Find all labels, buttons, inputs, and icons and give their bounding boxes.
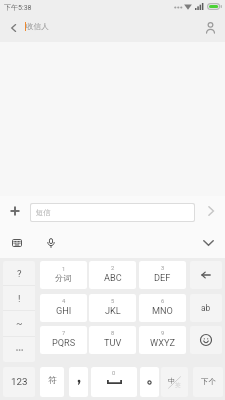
staticText: 123 bbox=[11, 376, 28, 387]
button[interactable]: 1 bbox=[40, 261, 87, 289]
staticText: MNO bbox=[152, 305, 173, 316]
staticText: 4 bbox=[62, 298, 66, 305]
staticText: 9 bbox=[161, 330, 165, 337]
staticText: 8 bbox=[111, 330, 115, 337]
button[interactable]: ~ bbox=[3, 311, 35, 336]
staticText: 6 bbox=[161, 298, 165, 305]
staticText: 1 bbox=[62, 266, 66, 273]
staticText: 5 bbox=[111, 298, 115, 305]
staticText: 短信 bbox=[36, 208, 51, 217]
staticText: 中 bbox=[168, 377, 175, 385]
button[interactable]: Send bbox=[199, 198, 223, 224]
staticText: 2 bbox=[111, 265, 115, 272]
staticText: 3 bbox=[161, 265, 165, 272]
staticText: 下个 bbox=[201, 377, 216, 386]
staticText: 分词 bbox=[55, 273, 72, 283]
button[interactable]: 符 bbox=[40, 367, 64, 397]
button[interactable]: 5 bbox=[89, 294, 136, 322]
button[interactable]: 9 bbox=[139, 326, 186, 354]
staticText: ~ bbox=[16, 318, 23, 329]
button[interactable]: 4 bbox=[40, 294, 87, 322]
staticText: TUV bbox=[104, 337, 122, 348]
staticText: 符 bbox=[48, 375, 57, 386]
button[interactable]: 123 bbox=[3, 367, 35, 397]
staticText: ! bbox=[18, 293, 21, 304]
button[interactable] bbox=[69, 367, 88, 397]
staticText: ? bbox=[17, 268, 22, 279]
staticText: 英 bbox=[175, 382, 181, 389]
button[interactable]: Add attachment bbox=[3, 198, 27, 224]
button[interactable]: Space bbox=[91, 367, 137, 397]
staticText: JKL bbox=[105, 305, 121, 316]
button[interactable]: Emoji bbox=[190, 326, 222, 354]
button[interactable]: Chinese English toggle bbox=[161, 367, 188, 397]
button[interactable]: Backspace bbox=[190, 261, 222, 289]
button[interactable] bbox=[140, 367, 159, 397]
button[interactable]: Back bbox=[2, 15, 25, 40]
button[interactable] bbox=[3, 337, 35, 362]
button[interactable]: ab bbox=[190, 294, 222, 322]
staticText: 7 bbox=[62, 330, 66, 337]
staticText: ABC bbox=[104, 272, 122, 283]
button[interactable]: Contacts bbox=[199, 15, 222, 40]
staticText: DEF bbox=[154, 272, 171, 283]
staticText: 下午5:38 bbox=[4, 3, 32, 12]
button[interactable]: 下个 bbox=[193, 367, 223, 397]
button[interactable]: Keyboard bbox=[4, 230, 29, 256]
staticText: 0 bbox=[112, 370, 116, 377]
staticText: ab bbox=[201, 303, 211, 313]
button[interactable]: 3 bbox=[139, 261, 186, 289]
button[interactable]: ? bbox=[3, 261, 35, 285]
staticText: 收信人 bbox=[26, 22, 49, 32]
button[interactable]: 6 bbox=[139, 294, 186, 322]
button[interactable]: Hide keyboard bbox=[196, 230, 221, 256]
button[interactable]: Voice input bbox=[38, 230, 63, 256]
staticText: GHI bbox=[56, 305, 72, 316]
staticText: WXYZ bbox=[150, 337, 175, 348]
button[interactable]: 7 bbox=[40, 326, 87, 354]
button[interactable]: 2 bbox=[89, 261, 136, 289]
button[interactable]: ! bbox=[3, 286, 35, 310]
button[interactable]: 短信 bbox=[31, 204, 194, 221]
button[interactable]: 8 bbox=[89, 326, 136, 354]
staticText: PQRS bbox=[52, 337, 76, 348]
